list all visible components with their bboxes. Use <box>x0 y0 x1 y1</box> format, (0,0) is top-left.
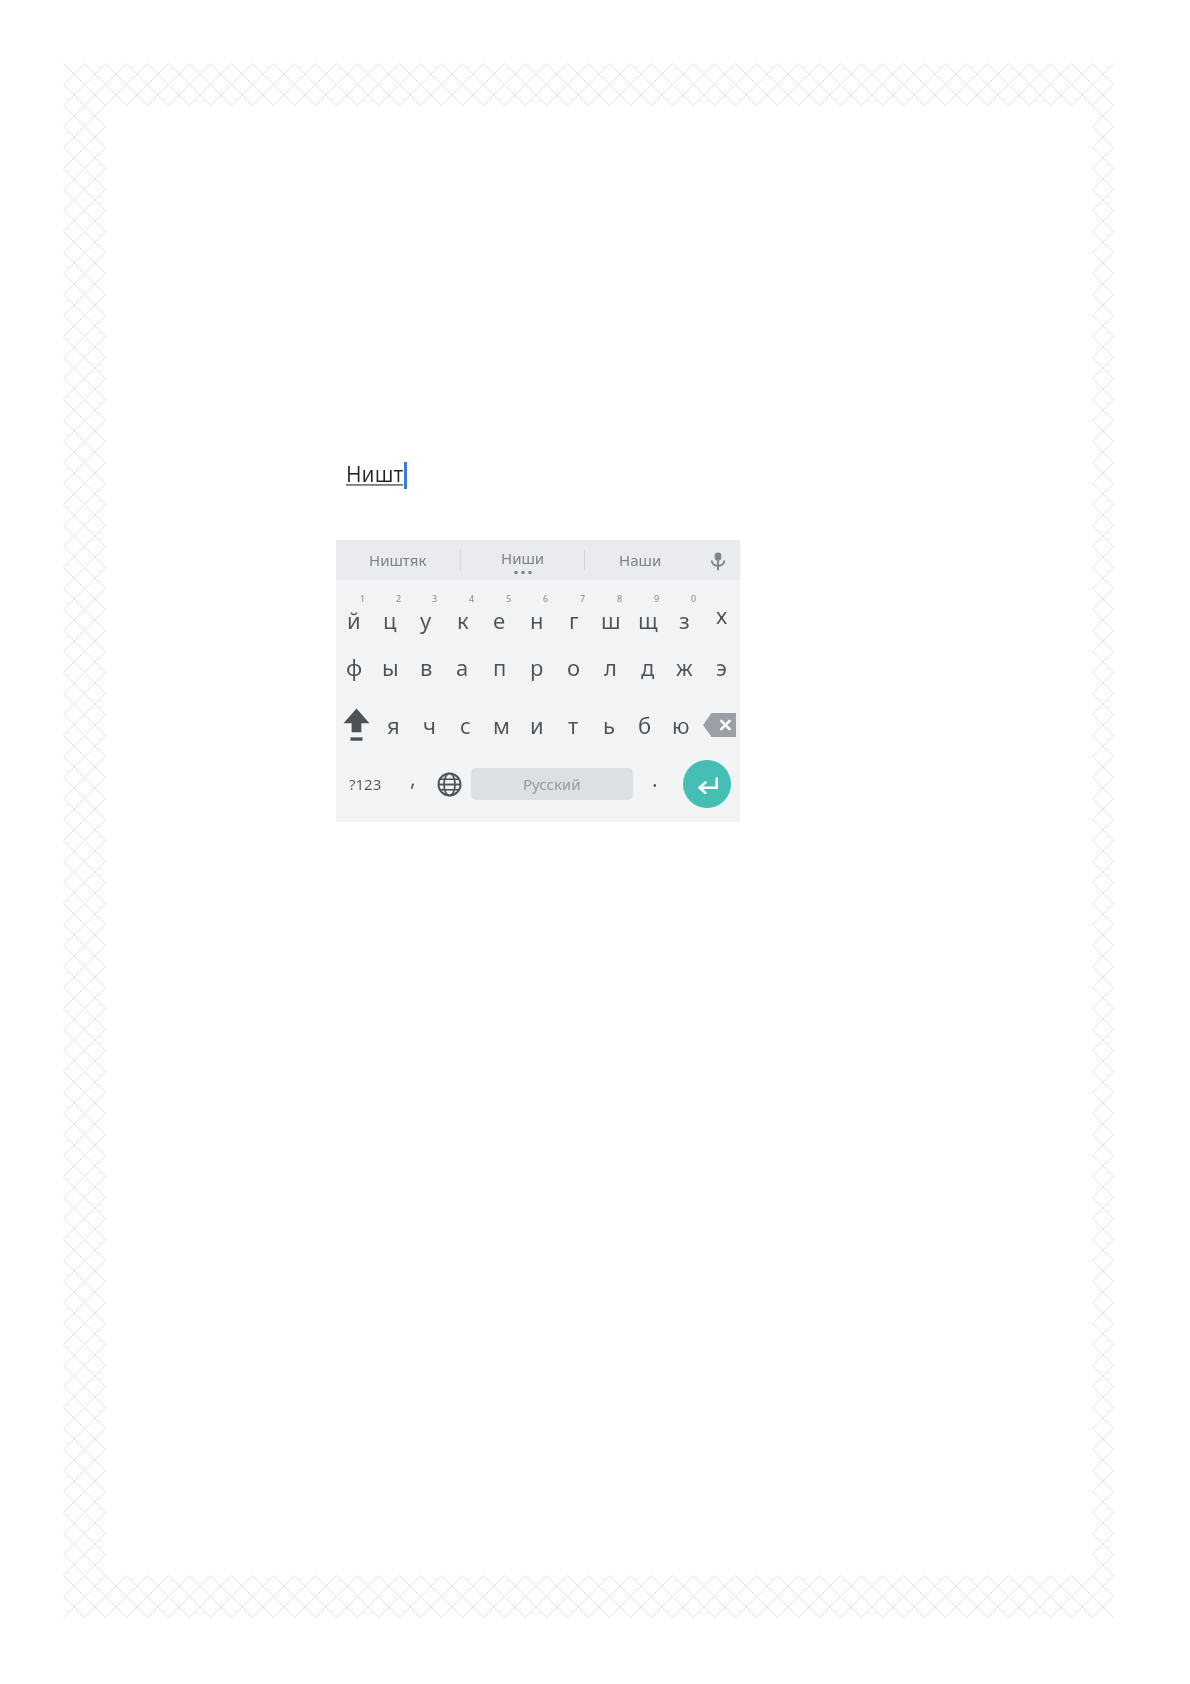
button[interactable]: в <box>408 638 444 696</box>
staticText: х <box>716 600 728 630</box>
staticText: 2 <box>396 592 402 604</box>
button[interactable]: с <box>447 696 483 754</box>
staticText: Ништяк <box>369 550 427 570</box>
staticText: ш <box>601 605 621 635</box>
staticText: н <box>530 605 544 635</box>
staticText: и <box>530 710 544 740</box>
staticText: ч <box>423 710 436 740</box>
staticText: м <box>493 710 510 740</box>
button[interactable]: ь <box>591 696 627 754</box>
button[interactable]: ю <box>663 696 699 754</box>
staticText: п <box>493 652 507 682</box>
button[interactable]: Ниши <box>461 540 584 580</box>
staticText: й <box>347 605 361 635</box>
staticText: р <box>530 652 544 682</box>
button[interactable]: 7 <box>555 592 592 638</box>
staticText: 1 <box>360 592 366 604</box>
staticText: а <box>456 652 469 682</box>
staticText: Ништ <box>346 460 404 489</box>
button[interactable]: д <box>629 638 666 696</box>
button[interactable]: 4 <box>444 592 481 638</box>
staticText: б <box>638 710 652 740</box>
staticText: ц <box>383 605 397 635</box>
staticText: з <box>679 605 690 635</box>
staticText: , <box>410 764 416 793</box>
staticText: 0 <box>691 592 697 604</box>
staticText: 6 <box>543 592 549 604</box>
button[interactable]: 8 <box>592 592 629 638</box>
button[interactable]: я <box>376 696 411 754</box>
staticText: к <box>457 605 469 635</box>
staticText: в <box>420 652 433 682</box>
staticText: ф <box>346 652 363 682</box>
button[interactable]: ?123 <box>336 754 394 814</box>
staticText: с <box>460 710 471 740</box>
staticText: э <box>716 652 727 682</box>
staticText: я <box>387 710 400 740</box>
button[interactable]: м <box>483 696 519 754</box>
button[interactable]: о <box>555 638 592 696</box>
button[interactable]: а <box>444 638 481 696</box>
button[interactable]: Enter <box>673 754 740 814</box>
button[interactable]: х <box>703 592 740 638</box>
button[interactable]: б <box>627 696 663 754</box>
button[interactable]: Наши <box>585 540 696 580</box>
staticText: ы <box>382 652 399 682</box>
staticText: ?123 <box>349 774 382 794</box>
button[interactable]: Shift <box>336 696 376 754</box>
staticText: г <box>569 605 579 635</box>
staticText: ю <box>672 710 690 740</box>
button[interactable]: 3 <box>408 592 444 638</box>
staticText: 7 <box>580 592 586 604</box>
staticText: 8 <box>617 592 623 604</box>
button[interactable]: э <box>703 638 740 696</box>
button[interactable]: , <box>394 754 431 814</box>
button[interactable]: 9 <box>629 592 666 638</box>
staticText: 5 <box>506 592 512 604</box>
staticText: у <box>420 605 432 635</box>
staticText: е <box>493 605 506 635</box>
button[interactable]: 6 <box>518 592 555 638</box>
staticText: . <box>652 765 658 794</box>
button[interactable]: Voice input <box>696 540 740 580</box>
button[interactable]: п <box>481 638 518 696</box>
button[interactable]: Ништяк <box>336 540 460 580</box>
staticText: Ниши <box>501 548 545 568</box>
staticText: ж <box>676 652 693 682</box>
button[interactable]: т <box>555 696 591 754</box>
staticText: 3 <box>432 592 438 604</box>
staticText: Наши <box>619 550 662 570</box>
staticText: щ <box>638 605 658 635</box>
button[interactable]: ч <box>411 696 447 754</box>
button[interactable]: ф <box>336 638 372 696</box>
button[interactable]: 0 <box>666 592 703 638</box>
button[interactable]: л <box>592 638 629 696</box>
button[interactable]: . <box>636 754 673 814</box>
staticText: 4 <box>469 592 475 604</box>
button[interactable]: 1 <box>336 592 372 638</box>
staticText: т <box>568 710 579 740</box>
button[interactable]: р <box>518 638 555 696</box>
staticText: 9 <box>654 592 660 604</box>
button[interactable]: Backspace <box>699 696 740 754</box>
button[interactable]: ж <box>666 638 703 696</box>
staticText: о <box>567 652 581 682</box>
staticText: д <box>641 652 655 682</box>
button[interactable]: 2 <box>372 592 408 638</box>
button[interactable]: Change language <box>431 754 468 814</box>
button[interactable]: и <box>519 696 555 754</box>
button[interactable]: 5 <box>481 592 518 638</box>
staticText: ь <box>603 710 615 740</box>
button[interactable]: ы <box>372 638 408 696</box>
staticText: л <box>604 652 617 682</box>
button[interactable]: Русский <box>471 768 633 800</box>
staticText: Русский <box>523 774 581 794</box>
